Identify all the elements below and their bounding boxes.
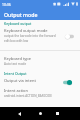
button[interactable]: Intent Output [0,70,80,77]
button[interactable]: Keyboard output mode [0,28,80,33]
button[interactable]: Output mode [4,11,38,18]
staticText: Keyboard type [4,56,32,61]
staticText: Auto text mode [4,62,27,66]
staticText: edit box with low [4,39,29,43]
staticText: android.intent.ACTION_BARCODE [4,94,52,98]
staticText: Intent action [4,88,29,93]
button[interactable]: Home [34,107,47,120]
button[interactable]: Recent apps [51,107,64,120]
button[interactable]: Back [13,107,26,120]
staticText: 10:36 [2,2,11,7]
button[interactable]: Turn off [61,77,74,88]
staticText: Keyboard output [4,21,32,26]
staticText: Output via intent [4,78,36,83]
other: Status icons [53,2,78,6]
button[interactable]: Output via intent [0,78,80,83]
button[interactable]: Keyboard type [0,56,80,61]
staticText: output the barcode into the forward [4,34,56,38]
staticText: Intent Output [4,71,27,76]
button[interactable]: Intent action [0,88,80,93]
button[interactable]: Keyboard output [0,20,80,27]
button[interactable]: Turn on [63,31,76,42]
staticText: Keyboard output mode [4,28,48,33]
